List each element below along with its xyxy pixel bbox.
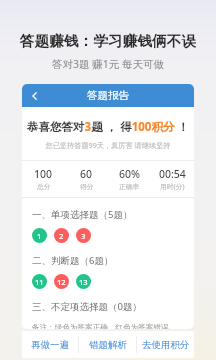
staticText: 二、判断题（6题）: [32, 254, 114, 267]
staticText: 一、单项选择题（5题）: [32, 208, 133, 221]
staticText: 总分: [37, 182, 51, 191]
staticText: 60: [80, 167, 93, 181]
button[interactable]: 返回: [22, 84, 48, 107]
button[interactable]: 去使用积分: [137, 331, 194, 358]
button[interactable]: 12: [54, 274, 69, 289]
staticText: 三、不定项选择题（0题）: [32, 300, 142, 313]
button[interactable]: 再做一遍: [22, 331, 78, 358]
button[interactable]: 2: [54, 228, 69, 243]
staticText: 100: [34, 167, 53, 181]
staticText: 1: [37, 231, 42, 241]
staticText: 错题解析: [89, 339, 127, 351]
staticText: 3: [81, 231, 86, 241]
staticText: 11: [35, 277, 44, 287]
staticText: 恭喜您答对3题 ， 得100积分 ！: [27, 119, 189, 135]
staticText: 正确率: [119, 182, 140, 191]
staticText: 去使用积分: [142, 339, 190, 351]
staticText: 您已坚持答题99天，真厉害 请继续坚持: [22, 140, 194, 150]
staticText: 得分: [80, 182, 94, 191]
button[interactable]: 3: [76, 228, 91, 243]
staticText: 答题赚钱：学习赚钱俩不误: [0, 32, 216, 50]
button[interactable]: 11: [32, 274, 47, 289]
staticText: 00:54: [159, 167, 186, 181]
staticText: 12: [57, 277, 66, 287]
staticText: 13: [79, 277, 88, 287]
staticText: 答题报告: [22, 89, 194, 102]
staticText: 答对3题 赚1元 每天可做: [0, 57, 216, 71]
button[interactable]: 13: [76, 274, 91, 289]
staticText: 用时(分): [160, 182, 185, 191]
staticText: 2: [59, 231, 64, 241]
staticText: 备注：绿色为答案正确，红色为答案错误: [32, 323, 169, 329]
button[interactable]: 1: [32, 228, 47, 243]
staticText: 再做一遍: [31, 339, 69, 351]
button[interactable]: 错题解析: [79, 331, 136, 358]
staticText: 60%: [119, 167, 140, 181]
